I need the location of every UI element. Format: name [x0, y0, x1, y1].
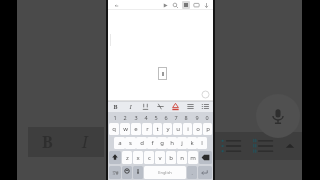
button[interactable]: k	[187, 137, 197, 149]
staticText: 3	[134, 114, 138, 121]
staticText: v	[158, 154, 162, 162]
staticText: e	[134, 125, 138, 133]
button[interactable]: Edit	[202, 91, 209, 98]
button[interactable]: 2	[120, 113, 129, 121]
staticText: o	[196, 125, 200, 133]
button[interactable]: English	[144, 166, 186, 179]
staticText: a	[118, 139, 122, 147]
staticText: 9	[195, 114, 199, 121]
button[interactable]: m	[188, 151, 198, 164]
staticText: q	[112, 125, 116, 133]
button[interactable]: y	[163, 123, 172, 135]
staticText: 0	[205, 114, 209, 121]
button[interactable]: Bulleted list	[214, 132, 248, 160]
button[interactable]: c	[144, 151, 154, 164]
button[interactable]: Edit mode	[182, 1, 190, 9]
button[interactable]: Numbered list	[248, 132, 278, 160]
staticText: B	[42, 131, 53, 153]
button[interactable]: 9	[192, 113, 201, 121]
staticText: h	[170, 139, 174, 147]
button[interactable]: Align	[186, 102, 195, 111]
button[interactable]: s	[125, 137, 136, 149]
button[interactable]: d	[136, 137, 147, 149]
button[interactable]: Collapse	[278, 132, 302, 160]
button[interactable]: f	[147, 137, 157, 149]
staticText: f	[151, 139, 154, 147]
button[interactable]: Emoji	[122, 166, 132, 179]
staticText: 8	[184, 114, 188, 121]
button[interactable]: Italic	[126, 102, 135, 111]
staticText: z	[126, 154, 129, 162]
staticText: b	[169, 154, 173, 162]
button[interactable]: u	[173, 123, 182, 135]
button[interactable]: 0	[202, 113, 211, 121]
staticText: B	[113, 103, 118, 111]
button[interactable]: Strikethrough	[156, 102, 165, 111]
staticText: p	[206, 125, 210, 133]
staticText: 4	[144, 114, 148, 121]
button[interactable]: r	[142, 123, 152, 135]
button[interactable]: Undo	[114, 3, 119, 8]
button[interactable]: z	[122, 151, 132, 164]
button[interactable]: 4	[141, 113, 150, 121]
staticText: I	[82, 131, 88, 153]
staticText: 2	[123, 114, 127, 121]
staticText: x	[136, 154, 140, 162]
button[interactable]: l	[197, 137, 207, 149]
button[interactable]: e	[131, 123, 141, 135]
button[interactable]: t	[153, 123, 162, 135]
button[interactable]: Voice input	[256, 94, 300, 138]
staticText: .	[191, 170, 193, 176]
button[interactable]: Shift	[109, 151, 121, 164]
staticText: s	[129, 139, 132, 147]
button[interactable]: Bold	[111, 102, 120, 111]
staticText: t	[156, 125, 159, 133]
button[interactable]: List	[201, 102, 210, 111]
button[interactable]: !?#	[109, 166, 121, 179]
button[interactable]: 3	[131, 113, 140, 121]
button[interactable]: Text color	[171, 102, 180, 111]
button[interactable]: 1	[110, 113, 119, 121]
staticText: k	[190, 139, 194, 147]
button[interactable]: j	[177, 137, 187, 149]
button[interactable]: v	[155, 151, 165, 164]
button[interactable]: Comment	[193, 2, 200, 9]
staticText: y	[166, 125, 170, 133]
button[interactable]: x	[133, 151, 143, 164]
button[interactable]: More options	[203, 2, 210, 9]
staticText: !?#	[112, 170, 119, 176]
staticText: u	[176, 125, 180, 133]
staticText: 1	[113, 114, 117, 121]
staticText: l	[201, 139, 203, 147]
button[interactable]: g	[157, 137, 167, 149]
staticText: r	[146, 125, 149, 133]
button[interactable]: p	[203, 123, 212, 135]
button[interactable]: 8	[181, 113, 190, 121]
button[interactable]: 5	[151, 113, 160, 121]
button[interactable]: B	[28, 127, 66, 157]
staticText: 5	[154, 114, 158, 121]
staticText: g	[160, 139, 164, 147]
button[interactable]: 6	[161, 113, 170, 121]
button[interactable]: a	[114, 137, 125, 149]
staticText: 6	[164, 114, 168, 121]
button[interactable]: Play	[162, 2, 169, 9]
button[interactable]: Enter	[198, 166, 212, 179]
button[interactable]: 7	[171, 113, 180, 121]
button[interactable]: n	[177, 151, 187, 164]
button[interactable]: Search	[172, 2, 179, 9]
button[interactable]: w	[120, 123, 130, 135]
staticText: m	[190, 154, 196, 162]
button[interactable]: b	[166, 151, 176, 164]
button[interactable]: h	[167, 137, 177, 149]
button[interactable]: i	[183, 123, 192, 135]
button[interactable]: o	[193, 123, 202, 135]
button[interactable]: Settings	[133, 166, 143, 179]
button[interactable]: Backspace	[199, 151, 212, 164]
staticText: c	[148, 154, 151, 162]
button[interactable]: q	[109, 123, 119, 135]
button[interactable]: Underline	[141, 102, 150, 111]
staticText: I	[129, 103, 132, 111]
